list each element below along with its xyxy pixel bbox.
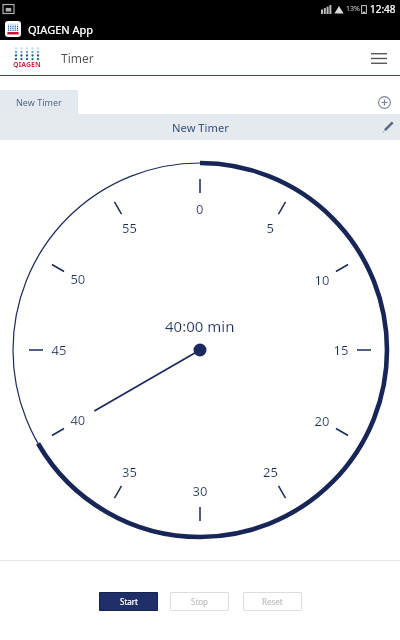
button[interactable]: Reset — [243, 592, 302, 611]
staticText: Timer — [61, 50, 94, 66]
button[interactable]: Start — [99, 592, 158, 611]
staticText: New Timer — [16, 96, 62, 108]
staticText: Start — [120, 596, 138, 607]
staticText: Stop — [191, 596, 209, 607]
button[interactable]: Menu — [362, 41, 396, 75]
staticText: QIAGEN — [13, 60, 41, 70]
staticText: 13% — [346, 4, 360, 14]
button[interactable]: New Timer — [0, 114, 400, 140]
staticText: New Timer — [172, 120, 229, 135]
staticText: 12:48 — [370, 2, 396, 16]
staticText: Reset — [262, 596, 283, 607]
staticText: QIAGEN App — [28, 22, 94, 37]
button[interactable]: New Timer — [0, 90, 78, 114]
button[interactable]: Edit — [374, 114, 400, 140]
button[interactable]: Stop — [170, 592, 229, 611]
button[interactable]: Add timer — [372, 90, 396, 114]
